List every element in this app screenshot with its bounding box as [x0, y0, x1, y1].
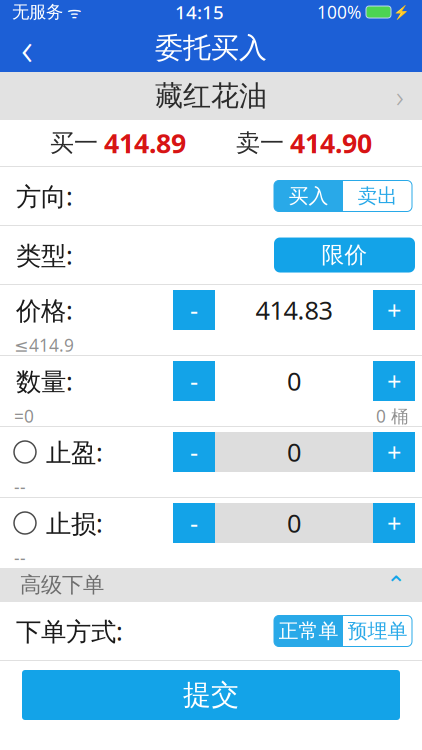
- staticText: 414.89: [104, 125, 186, 161]
- staticText: -: [190, 293, 198, 327]
- staticText: 414.90: [290, 125, 372, 161]
- button[interactable]: Decrease: [173, 361, 215, 401]
- button[interactable]: 限价: [274, 237, 415, 272]
- staticText: 数量:: [16, 364, 73, 398]
- staticText: 藏红花油: [155, 79, 267, 113]
- button[interactable]: Decrease: [173, 432, 215, 472]
- staticText: +: [387, 506, 401, 540]
- button[interactable]: Increase: [373, 361, 415, 401]
- staticText: +: [387, 435, 401, 469]
- button[interactable]: Back: [0, 24, 54, 72]
- staticText: 方向:: [16, 179, 73, 213]
- button[interactable]: Decrease: [173, 290, 215, 330]
- staticText: -: [190, 506, 198, 540]
- staticText: 止损:: [46, 506, 103, 540]
- button[interactable]: 高级下单: [0, 568, 422, 602]
- staticText: 预埋单: [347, 619, 407, 643]
- staticText: 提交: [183, 678, 239, 712]
- staticText: ≤414.9: [14, 333, 74, 356]
- button[interactable]: 买入: [274, 180, 343, 211]
- button[interactable]: 正常单: [274, 615, 343, 646]
- button[interactable]: Increase: [373, 432, 415, 472]
- staticText: 下单方式:: [16, 614, 123, 648]
- button[interactable]: 卖出: [343, 180, 412, 211]
- staticText: 卖出: [357, 184, 397, 208]
- staticText: ᯤ: [63, 1, 82, 23]
- staticText: 14:15: [175, 0, 224, 24]
- staticText: 类型:: [16, 238, 73, 272]
- button[interactable]: 藏红花油: [0, 72, 422, 120]
- staticText: 414.83: [255, 293, 332, 327]
- staticText: 限价: [321, 241, 367, 269]
- staticText: +: [387, 364, 401, 398]
- staticText: 0: [287, 364, 301, 398]
- staticText: 止盈:: [46, 435, 103, 469]
- staticText: +: [387, 293, 401, 327]
- button[interactable]: 预埋单: [343, 615, 412, 646]
- staticText: 正常单: [278, 619, 338, 643]
- staticText: 0: [287, 506, 301, 540]
- button[interactable]: Enable take profit: [0, 441, 46, 463]
- staticText: 高级下单: [20, 572, 104, 598]
- staticText: 买一: [50, 128, 98, 158]
- staticText: -: [190, 435, 198, 469]
- button[interactable]: Increase: [373, 503, 415, 543]
- button[interactable]: Enable stop loss: [0, 512, 46, 534]
- staticText: 卖一: [236, 128, 284, 158]
- button[interactable]: 提交: [22, 670, 400, 720]
- staticText: =0: [14, 404, 34, 427]
- staticText: --: [14, 546, 26, 569]
- staticText: 买入: [288, 184, 328, 208]
- staticText: 价格:: [16, 293, 73, 327]
- staticText: 0: [287, 435, 301, 469]
- staticText: ⌃: [386, 571, 406, 599]
- staticText: ‹: [21, 18, 33, 78]
- staticText: 无服务: [12, 1, 63, 23]
- staticText: 委托买入: [155, 31, 267, 65]
- staticText: ⚡: [393, 4, 410, 20]
- button[interactable]: Increase: [373, 290, 415, 330]
- staticText: -: [190, 364, 198, 398]
- staticText: 0 桶: [376, 404, 408, 427]
- staticText: 100%: [317, 0, 361, 23]
- staticText: ›: [396, 76, 404, 115]
- button[interactable]: Decrease: [173, 503, 215, 543]
- staticText: --: [14, 475, 26, 498]
